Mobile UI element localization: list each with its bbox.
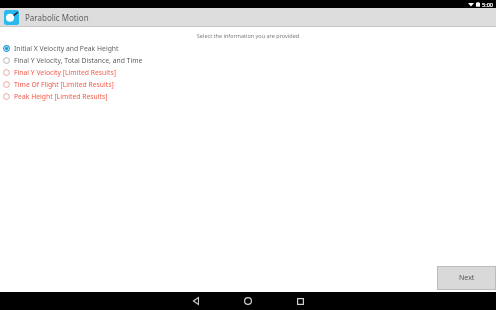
button[interactable]: Final Y Velocity [Limited Results]	[0, 66, 496, 78]
button[interactable]: Peak Height [Limited Results]	[0, 90, 496, 102]
button[interactable]: Back	[187, 292, 205, 310]
staticText: Final Y Velocity, Total Distance, and Ti…	[14, 56, 143, 65]
button[interactable]: Final Y Velocity, Total Distance, and Ti…	[0, 54, 496, 66]
button[interactable]: Home	[239, 292, 257, 310]
button[interactable]: Recent apps	[291, 292, 309, 310]
staticText: Final Y Velocity [Limited Results]	[14, 68, 116, 77]
staticText: 5:00	[482, 1, 493, 8]
button[interactable]: Initial X Velocity and Peak Height	[0, 42, 496, 54]
staticText: Parabolic Motion	[25, 12, 89, 23]
button[interactable]: Time Of Flight [Limited Results]	[0, 78, 496, 90]
staticText: Initial X Velocity and Peak Height	[14, 44, 119, 53]
staticText: Select the information you are provided	[0, 32, 496, 39]
staticText: Peak Height [Limited Results]	[14, 92, 108, 101]
other: Parabolic Motion app icon	[4, 10, 19, 25]
button[interactable]: Next	[437, 266, 496, 290]
staticText: Time Of Flight [Limited Results]	[14, 80, 114, 89]
staticText: Next	[459, 273, 475, 283]
